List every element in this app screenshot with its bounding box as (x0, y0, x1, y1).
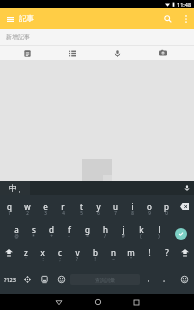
button[interactable]: q (0, 195, 18, 218)
staticText: ( (140, 233, 142, 239)
staticText: 8 (131, 210, 134, 216)
button[interactable]: New list (50, 46, 95, 60)
button[interactable]: y (90, 195, 107, 218)
button[interactable]: x (34, 241, 51, 264)
button[interactable]: Recent apps (117, 294, 156, 310)
button[interactable]: Voice input (180, 181, 194, 195)
staticText: v (75, 247, 80, 258)
button[interactable]: m (122, 241, 140, 264)
button[interactable]: Shift right (176, 241, 194, 264)
staticText: i (131, 201, 134, 212)
button[interactable]: b (86, 241, 104, 264)
staticText: ? (76, 256, 78, 262)
staticText: ?123 (4, 276, 16, 283)
staticText: 。 (163, 276, 169, 283)
staticText: ! (94, 256, 96, 262)
staticText: h (103, 224, 108, 235)
button[interactable]: Backspace (175, 195, 194, 218)
button[interactable]: t (72, 195, 90, 218)
button[interactable]: d (42, 218, 60, 241)
staticText: r (61, 201, 65, 212)
button[interactable]: l (150, 218, 168, 241)
button[interactable]: 查詢詞彙 (70, 274, 140, 285)
button[interactable]: ?123 (0, 264, 19, 294)
staticText: o (147, 201, 152, 212)
button[interactable]: ? (158, 241, 176, 264)
staticText: u (113, 201, 118, 212)
button[interactable]: a (8, 218, 25, 241)
button[interactable]: 。 (157, 264, 174, 294)
button[interactable]: e (36, 195, 54, 218)
button[interactable]: z (17, 241, 34, 264)
staticText: e (43, 201, 48, 212)
button[interactable]: Move cursor (19, 264, 36, 294)
staticText: z (24, 247, 28, 258)
staticText: j (122, 224, 125, 235)
button[interactable]: Navigation menu (0, 9, 20, 29)
button[interactable]: j (114, 218, 132, 241)
staticText: 1 (8, 210, 11, 216)
staticText: y (96, 201, 101, 212)
button[interactable]: ! (140, 241, 158, 264)
staticText: w (24, 201, 31, 212)
button[interactable]: 中 (0, 181, 30, 195)
button[interactable]: ， (141, 264, 157, 294)
button[interactable]: Emoticons (174, 264, 194, 294)
button[interactable]: Enter (168, 218, 194, 241)
button[interactable]: More options (178, 11, 194, 27)
staticText: ' (25, 256, 27, 262)
button[interactable]: k (132, 218, 150, 241)
staticText: g (85, 224, 90, 235)
button[interactable]: Shift (0, 241, 17, 264)
button[interactable]: g (78, 218, 96, 241)
button[interactable]: o (141, 195, 158, 218)
button[interactable]: New note (5, 46, 50, 60)
staticText: m (127, 247, 135, 258)
button[interactable]: v (68, 241, 86, 264)
staticText: 0 (165, 210, 168, 216)
staticText: 記事 (19, 14, 34, 23)
button[interactable]: Change keyboard (36, 264, 53, 294)
staticText: 3 (44, 210, 47, 216)
button[interactable]: p (158, 195, 175, 218)
button[interactable]: u (107, 195, 124, 218)
staticText: / (104, 233, 106, 239)
staticText: a (14, 224, 19, 235)
staticText: t (80, 201, 83, 212)
button[interactable]: f (60, 218, 78, 241)
button[interactable]: h (96, 218, 114, 241)
staticText: 2 (26, 210, 29, 216)
button[interactable]: Home (78, 294, 117, 310)
button[interactable]: n (104, 241, 122, 264)
staticText: = (86, 233, 89, 239)
staticText: - (68, 233, 70, 239)
staticText: ? (165, 247, 169, 258)
button[interactable]: r (54, 195, 72, 218)
staticText: * (32, 233, 35, 239)
button[interactable]: Photo note (140, 46, 185, 60)
staticText: ~ (112, 256, 115, 262)
staticText: p (164, 201, 169, 212)
staticText: 7 (114, 210, 117, 216)
staticText: 6 (97, 210, 100, 216)
button[interactable]: Voice note (95, 46, 140, 60)
button[interactable]: Search (158, 9, 178, 29)
staticText: 5 (80, 210, 83, 216)
staticText: ; (59, 256, 61, 262)
staticText: c (58, 247, 62, 258)
staticText: d (49, 224, 54, 235)
button[interactable]: Back (39, 294, 78, 310)
button[interactable]: c (51, 241, 68, 264)
staticText: " (130, 256, 132, 262)
button[interactable]: i (124, 195, 141, 218)
staticText: q (7, 201, 12, 212)
button[interactable]: Emoji (53, 264, 69, 294)
button[interactable]: w (18, 195, 36, 218)
button[interactable]: s (25, 218, 42, 241)
staticText: 新增記事 (6, 33, 30, 41)
staticText: 查詢詞彙 (95, 277, 115, 283)
staticText: s (32, 224, 36, 235)
staticText: 11:48 (177, 1, 192, 8)
staticText: ， (146, 276, 152, 283)
staticText: l (158, 224, 161, 235)
